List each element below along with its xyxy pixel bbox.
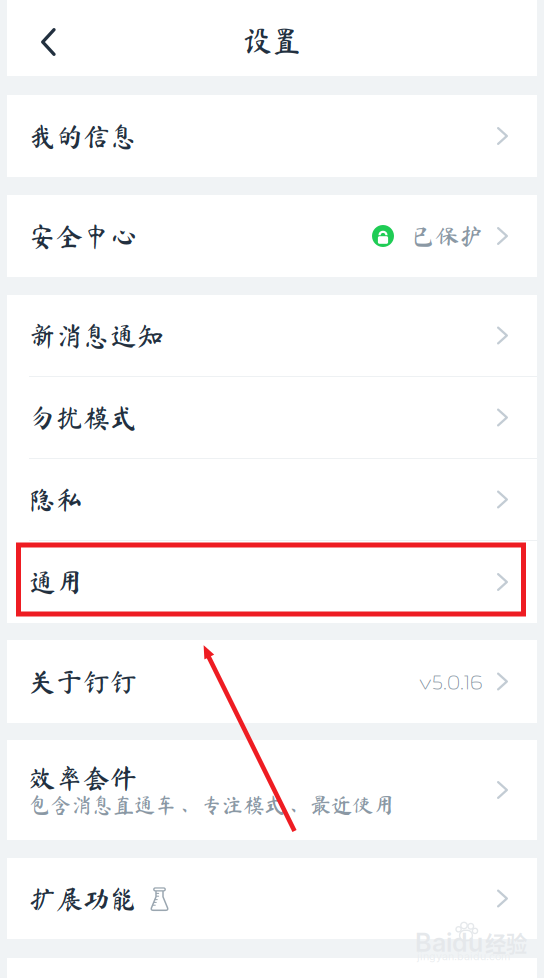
button[interactable]: Back bbox=[7, 0, 73, 76]
staticText: 我的信息 bbox=[29, 123, 137, 149]
staticText: jingyan.baidu.com bbox=[417, 950, 510, 963]
staticText: 安全中心 bbox=[29, 223, 137, 249]
button[interactable]: 扩展功能 bbox=[7, 858, 537, 939]
button[interactable]: 效率套件 bbox=[7, 740, 537, 840]
button[interactable]: 关于钉钉 bbox=[7, 640, 537, 723]
button[interactable]: 通用 bbox=[7, 541, 537, 623]
staticText: 经验 bbox=[485, 927, 527, 958]
staticText: 勿扰模式 bbox=[29, 404, 137, 431]
staticText: 效率套件 bbox=[29, 764, 137, 791]
staticText: Baidu bbox=[415, 927, 483, 958]
staticText: 新消息通知 bbox=[29, 322, 164, 349]
staticText: v5.0.16 bbox=[419, 669, 483, 694]
staticText: 设置 bbox=[243, 26, 301, 55]
button[interactable]: 新消息通知 bbox=[7, 295, 537, 377]
button[interactable]: 我的信息 bbox=[7, 95, 537, 177]
staticText: 扩展功能 bbox=[29, 885, 137, 912]
staticText: 包含消息直通车 、专注模式 、最近使用 bbox=[29, 794, 394, 815]
button[interactable]: 勿扰模式 bbox=[7, 377, 537, 459]
staticText: 已保护 bbox=[411, 224, 483, 248]
staticText: 隐私 bbox=[29, 486, 83, 513]
button[interactable]: 隐私 bbox=[7, 459, 537, 541]
staticText: 关于钉钉 bbox=[29, 668, 137, 695]
button[interactable]: 安全中心 bbox=[7, 195, 537, 277]
staticText: 通用 bbox=[29, 569, 83, 595]
